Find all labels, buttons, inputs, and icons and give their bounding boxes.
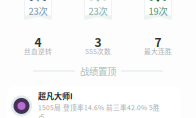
staticText: 23次 <box>88 4 107 17</box>
staticText: 丝血逆转 <box>24 46 52 56</box>
button[interactable]: 7 <box>128 33 188 56</box>
staticText: 23次 <box>28 4 47 17</box>
staticText: SSS次数 <box>85 46 111 56</box>
staticText: 3 <box>94 33 101 50</box>
button[interactable]: 4 <box>8 33 68 56</box>
staticText: 战绩置顶 <box>80 64 116 78</box>
staticText: 4 <box>34 33 41 50</box>
button[interactable]: 超凡大师I <box>7 86 181 118</box>
button[interactable]: 3 <box>68 33 128 56</box>
button[interactable]: 23次 <box>24 0 52 20</box>
staticText: 7 <box>154 33 161 50</box>
button[interactable]: 23次 <box>84 0 112 20</box>
staticText: 1505局 登顶率14.6% 前三率42.0% 5胜点 <box>38 103 160 118</box>
staticText: 超凡大师I <box>38 90 73 102</box>
staticText: 19次 <box>148 4 167 17</box>
staticText: 最大连胜 <box>144 46 172 56</box>
button[interactable]: 19次 <box>144 0 172 20</box>
